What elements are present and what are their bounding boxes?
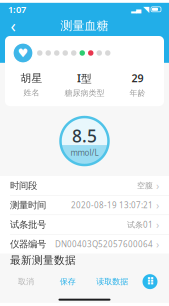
staticText: › <box>156 237 159 251</box>
staticText: ‹ <box>10 14 15 37</box>
staticText: › <box>156 217 159 232</box>
staticText: 年龄 <box>129 88 145 98</box>
staticText: 29 <box>131 71 143 85</box>
staticText: I型 <box>77 71 92 85</box>
staticText: 仪器编号 <box>10 238 46 250</box>
staticText: DN00403Q52057600064 <box>55 239 153 249</box>
button[interactable]: Bluetooth device <box>141 273 159 291</box>
button[interactable]: 试条批号 <box>0 214 169 234</box>
staticText: ⠿ <box>146 276 154 288</box>
button[interactable]: 保存 <box>52 275 84 289</box>
button[interactable]: 取消 <box>10 275 42 289</box>
staticText: 2020-08-19 13:07:21 <box>71 200 153 210</box>
staticText: 最新测量数据 <box>10 253 76 267</box>
staticText: ◥ <box>143 5 149 14</box>
staticText: 糖尿病类型 <box>64 88 104 98</box>
button[interactable]: 仪器编号 <box>0 234 169 253</box>
staticText: 试条01 <box>127 219 153 230</box>
staticText: 取消 <box>18 277 34 286</box>
button[interactable]: 时间段 <box>0 176 169 195</box>
staticText: 保存 <box>60 277 76 286</box>
staticText: 空腹 <box>137 181 153 190</box>
staticText: › <box>156 178 159 193</box>
staticText: 时间段 <box>10 180 37 191</box>
staticText: › <box>156 198 159 212</box>
staticText: mmol/L <box>70 147 98 158</box>
staticText: 试条批号 <box>10 219 46 230</box>
button[interactable]: 测量时间 <box>0 195 169 214</box>
staticText: 测量血糖 <box>60 18 108 33</box>
button[interactable]: Back <box>4 17 22 35</box>
button[interactable]: 读取数据 <box>93 275 131 289</box>
staticText: 8.5 <box>72 124 97 147</box>
staticText: 胡星 <box>20 72 42 85</box>
staticText: ♥ <box>17 46 28 60</box>
staticText: 姓名 <box>23 88 39 97</box>
staticText: 测量时间 <box>10 199 46 211</box>
staticText: ▂▄ <box>131 5 141 13</box>
staticText: 1:07 <box>8 3 26 15</box>
staticText: 读取数据 <box>96 277 128 286</box>
